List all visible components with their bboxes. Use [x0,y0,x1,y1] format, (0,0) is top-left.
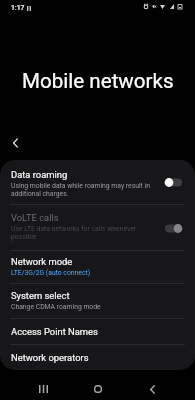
staticText: Mobile networks [22,69,174,93]
button[interactable]: Turn on [162,174,184,190]
button[interactable]: Turn off [162,220,184,236]
staticText: 1:17 [11,4,25,12]
staticText: LTE/3G/2G (auto connect) [11,268,91,276]
button[interactable]: Navigate up [4,132,26,154]
staticText: Network operators [11,352,89,363]
staticText: System select [11,290,70,301]
staticText: VoLTE calls [11,212,59,223]
button[interactable]: VoLTE calls [0,205,195,250]
staticText: Use LTE data networks for calls whenever… [11,224,156,240]
button[interactable]: Network operators [0,345,195,370]
staticText: Data roaming [11,169,68,180]
button[interactable]: Back [138,375,166,400]
button[interactable]: Recent apps [29,375,57,400]
button[interactable]: Network mode [0,251,195,283]
staticText: Change CDMA roaming mode [11,302,101,310]
button[interactable]: Home [84,375,112,400]
button[interactable]: System select [0,284,195,318]
staticText: Access Point Names [11,326,98,337]
button[interactable]: Data roaming [0,160,195,204]
button[interactable]: Access Point Names [0,319,195,344]
staticText: Network mode [11,256,73,267]
staticText: Using mobile data while roaming may resu… [11,181,156,197]
